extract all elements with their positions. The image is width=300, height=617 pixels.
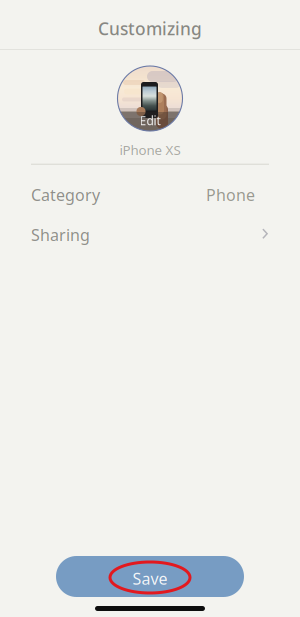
button[interactable]: Sharing (0, 215, 300, 255)
staticText: Edit (139, 112, 160, 128)
button[interactable]: Category (0, 175, 300, 215)
button[interactable]: Edit photo (117, 66, 182, 131)
staticText: Category (31, 184, 100, 205)
staticText: Sharing (31, 224, 90, 245)
staticText: iPhone XS (119, 141, 180, 159)
staticText: Save (132, 568, 167, 589)
button[interactable]: Save (56, 556, 244, 597)
staticText: Phone (206, 184, 255, 205)
staticText: Customizing (98, 17, 202, 40)
